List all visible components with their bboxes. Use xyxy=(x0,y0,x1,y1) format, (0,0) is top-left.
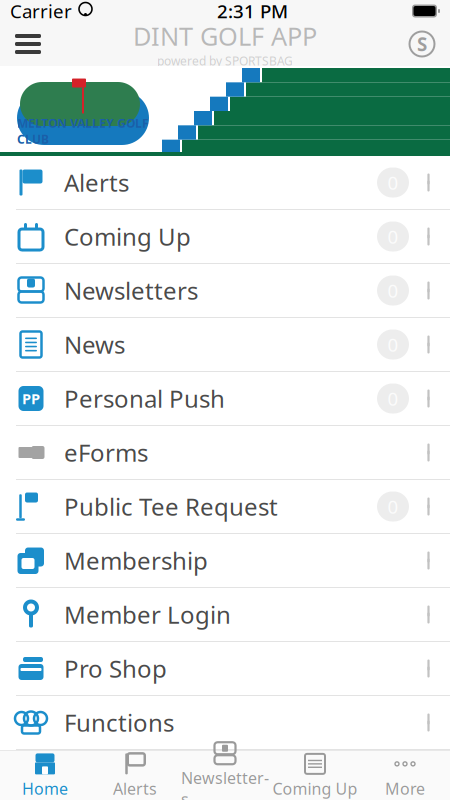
staticText: Coming Up xyxy=(272,778,357,799)
staticText: Home xyxy=(22,778,68,799)
button[interactable]: Public Tee Request xyxy=(0,480,450,534)
staticText: 0 xyxy=(387,224,398,249)
button[interactable]: Pro Shop xyxy=(0,642,450,696)
button[interactable]: Menu xyxy=(0,22,56,66)
staticText: Newsletters xyxy=(64,275,198,306)
staticText: Newsletters xyxy=(181,767,269,800)
staticText: Carrier xyxy=(10,0,72,23)
button[interactable]: Newsletters xyxy=(180,751,270,800)
button[interactable]: More xyxy=(360,751,450,800)
button[interactable]: Membership xyxy=(0,534,450,588)
staticText: 0 xyxy=(387,386,398,411)
staticText: Functions xyxy=(64,707,174,738)
staticText: Membership xyxy=(64,545,208,576)
staticText: 0 xyxy=(387,170,398,195)
button[interactable]: Coming Up xyxy=(270,751,360,800)
staticText: News xyxy=(64,329,125,360)
staticText: Pro Shop xyxy=(64,653,167,684)
staticText: 0 xyxy=(387,494,398,519)
staticText: MELTON VALLEY GOLF CLUB xyxy=(17,115,149,147)
staticText: 2:31 PM xyxy=(217,0,288,23)
staticText: 0 xyxy=(387,332,398,357)
staticText: DINT GOLF APP xyxy=(133,19,317,53)
staticText: More xyxy=(385,778,425,799)
button[interactable]: Coming Up xyxy=(0,210,450,264)
staticText: eForms xyxy=(64,437,148,468)
button[interactable]: eForms xyxy=(0,426,450,480)
staticText: Personal Push xyxy=(64,383,225,414)
button[interactable]: Alerts xyxy=(90,751,180,800)
staticText: Alerts xyxy=(64,167,129,198)
staticText: Alerts xyxy=(113,778,157,799)
button[interactable]: Alerts xyxy=(0,156,450,210)
staticText: Member Login xyxy=(64,599,231,630)
button[interactable]: Newsletters xyxy=(0,264,450,318)
button[interactable]: Functions xyxy=(0,696,450,750)
staticText: PP xyxy=(22,389,40,408)
button[interactable]: PP xyxy=(0,372,450,426)
button[interactable]: Member Login xyxy=(0,588,450,642)
staticText: Public Tee Request xyxy=(64,491,278,522)
staticText: 0 xyxy=(387,278,398,303)
staticText: powered by SPORTSBAG xyxy=(157,53,293,69)
button[interactable]: News xyxy=(0,318,450,372)
staticText: Coming Up xyxy=(64,221,191,252)
button[interactable]: Home xyxy=(0,751,90,800)
staticText: S xyxy=(417,32,427,56)
button[interactable]: Sportsbag xyxy=(394,22,450,66)
